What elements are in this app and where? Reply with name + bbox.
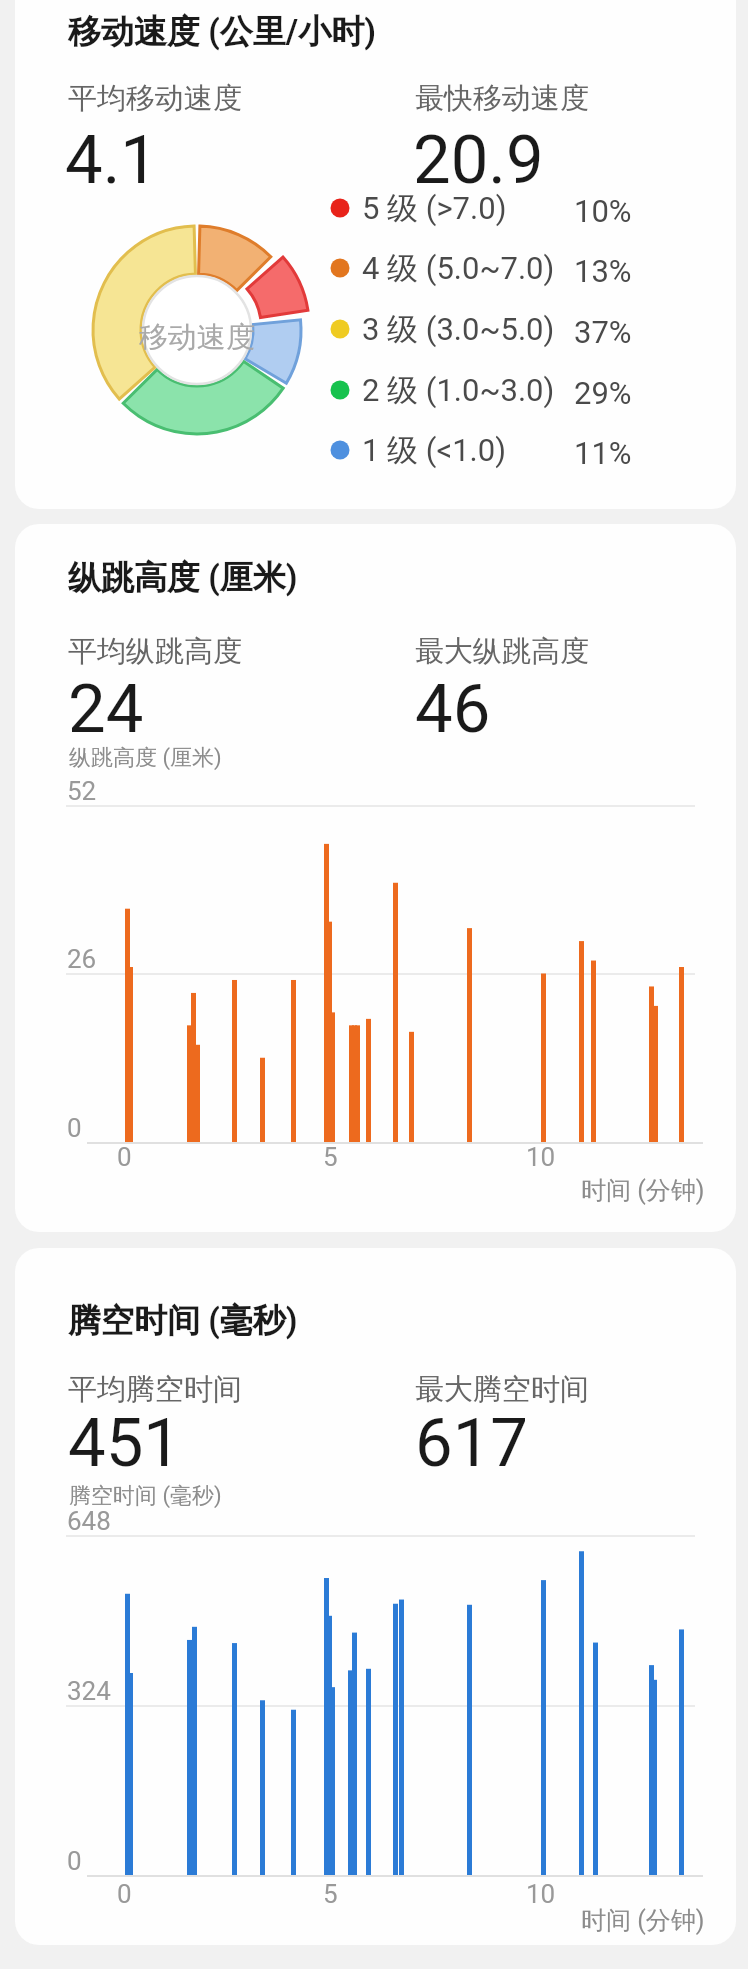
- staticText: 10%: [574, 193, 632, 229]
- staticText: 0: [67, 1113, 82, 1143]
- staticText: 29%: [574, 375, 632, 411]
- staticText: 腾空时间 (毫秒): [69, 1482, 222, 1510]
- staticText: 3 级 (3.0~5.0): [362, 310, 555, 349]
- staticText: 4 级 (5.0~7.0): [362, 249, 555, 288]
- staticText: 时间 (分钟): [581, 1905, 705, 1936]
- staticText: 46: [415, 670, 491, 749]
- staticText: 10: [526, 1879, 556, 1909]
- staticText: 平均纵跳高度: [68, 633, 242, 670]
- staticText: 腾空时间 (毫秒): [68, 1300, 298, 1342]
- staticText: 20.9: [413, 121, 544, 200]
- staticText: 5: [323, 1879, 338, 1909]
- staticText: 4.1: [65, 121, 158, 200]
- staticText: 11%: [574, 435, 632, 471]
- staticText: 0: [117, 1879, 132, 1909]
- staticText: 纵跳高度 (厘米): [68, 557, 298, 599]
- staticText: 平均腾空时间: [68, 1371, 242, 1408]
- staticText: 2 级 (1.0~3.0): [362, 371, 555, 410]
- staticText: 5: [323, 1142, 338, 1172]
- staticText: 0: [117, 1142, 132, 1172]
- staticText: 26: [67, 944, 97, 974]
- staticText: 最大纵跳高度: [415, 633, 589, 670]
- staticText: 37%: [574, 314, 632, 350]
- staticText: 617: [415, 1404, 528, 1483]
- staticText: 0: [67, 1846, 82, 1876]
- staticText: 时间 (分钟): [581, 1175, 705, 1206]
- staticText: 324: [67, 1676, 111, 1706]
- staticText: 5 级 (>7.0): [362, 189, 507, 228]
- staticText: 移动速度 (公里/小时): [68, 11, 376, 53]
- staticText: 平均移动速度: [68, 80, 242, 117]
- staticText: 52: [67, 776, 97, 806]
- staticText: 最快移动速度: [415, 80, 589, 117]
- staticText: 移动速度: [139, 319, 255, 355]
- staticText: 648: [67, 1506, 111, 1536]
- staticText: 451: [68, 1404, 181, 1483]
- staticText: 纵跳高度 (厘米): [69, 744, 222, 772]
- staticText: 13%: [574, 253, 632, 289]
- staticText: 10: [526, 1142, 556, 1172]
- staticText: 最大腾空时间: [415, 1371, 589, 1408]
- staticText: 24: [68, 670, 144, 749]
- staticText: 1 级 (<1.0): [362, 431, 506, 470]
